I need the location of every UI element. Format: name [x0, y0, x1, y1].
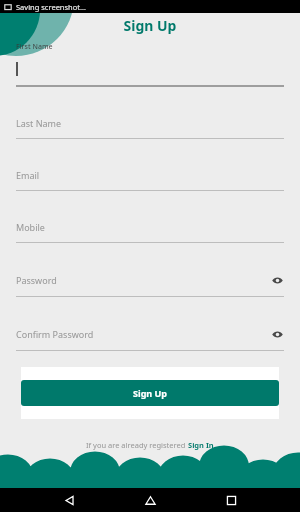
staticText: Email: [16, 169, 40, 181]
staticText: Saving screenshot…: [16, 2, 86, 12]
button[interactable]: Confirm Password: [16, 327, 284, 351]
button[interactable]: If you are already registered: [0, 440, 300, 450]
button[interactable]: Mobile: [16, 221, 284, 243]
button[interactable]: Home: [138, 488, 162, 512]
button[interactable]: Recent apps: [219, 488, 243, 512]
button[interactable]: First Name: [16, 42, 284, 87]
staticText: Confirm Password: [16, 328, 94, 340]
staticText: Sign Up: [0, 16, 300, 35]
staticText: If you are already registered: [86, 440, 188, 450]
button[interactable]: Last Name: [16, 117, 284, 139]
button[interactable]: Email: [16, 169, 284, 191]
button[interactable]: Sign Up: [21, 380, 279, 406]
button[interactable]: Toggle password visibility: [270, 327, 284, 341]
staticText: Sign In: [188, 440, 214, 450]
staticText: Last Name: [16, 117, 62, 129]
staticText: Mobile: [16, 221, 45, 233]
button[interactable]: Toggle password visibility: [270, 273, 284, 287]
staticText: Password: [16, 274, 57, 286]
staticText: First Name: [16, 42, 53, 52]
button[interactable]: Back: [57, 488, 81, 512]
staticText: Sign Up: [133, 387, 168, 399]
button[interactable]: Password: [16, 273, 284, 297]
